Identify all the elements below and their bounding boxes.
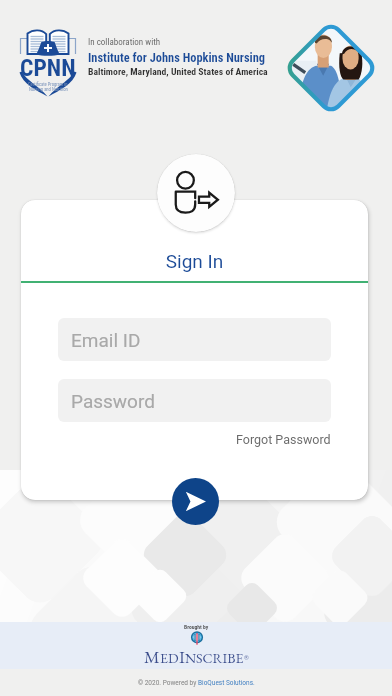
button[interactable]: Password <box>58 379 331 422</box>
staticText: Password <box>71 390 155 412</box>
button[interactable]: Email ID <box>58 318 331 361</box>
staticText: Certificate Program in <box>28 82 68 87</box>
button[interactable]: Forgot Password <box>232 428 335 451</box>
staticText: Sign In <box>21 250 368 272</box>
staticText: BioQuest Solutions. <box>198 679 255 687</box>
staticText: Nursing and Nutrition <box>29 87 68 92</box>
staticText: Institute for Johns Hopkins Nursing <box>88 50 266 65</box>
staticText: © 2020. Powered by <box>138 679 198 687</box>
button[interactable]: Sign in <box>157 154 235 232</box>
staticText: ® <box>244 653 249 662</box>
staticText: Forgot Password <box>236 432 331 447</box>
button[interactable]: Submit <box>172 478 219 525</box>
staticText: Baltimore, Maryland, United States of Am… <box>88 66 268 77</box>
staticText: In collaboration with <box>88 37 161 48</box>
staticText: NSCRIBE <box>185 649 244 667</box>
staticText: Email ID <box>71 329 141 351</box>
staticText: M <box>144 645 160 668</box>
staticText: I <box>179 645 185 668</box>
staticText: Brought by <box>184 624 209 631</box>
staticText: CPNN <box>20 54 76 82</box>
staticText: ED <box>160 649 179 667</box>
